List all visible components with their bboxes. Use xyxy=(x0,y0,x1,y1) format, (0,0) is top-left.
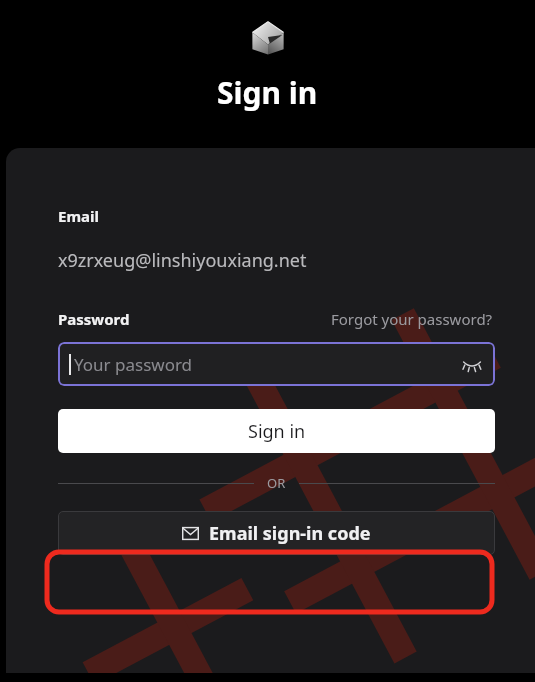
other: App logo xyxy=(242,12,294,64)
staticText: Email sign-in code xyxy=(209,521,371,546)
staticText: Email xyxy=(58,206,99,226)
staticText: x9zrxeug@linshiyouxiang.net xyxy=(58,248,307,273)
staticText: Password xyxy=(58,309,130,329)
button[interactable]: Email sign-in code xyxy=(58,511,495,555)
button[interactable]: Forgot your password? xyxy=(329,307,495,331)
button[interactable]: Sign in xyxy=(58,409,495,453)
staticText: Forgot your password? xyxy=(331,309,493,329)
staticText: Sign in xyxy=(248,419,306,444)
staticText: OR xyxy=(267,474,286,492)
button[interactable]: Show password xyxy=(460,352,484,376)
button[interactable]: Your password xyxy=(58,342,495,386)
staticText: Your password xyxy=(74,353,193,376)
staticText: Sign in xyxy=(217,72,318,113)
